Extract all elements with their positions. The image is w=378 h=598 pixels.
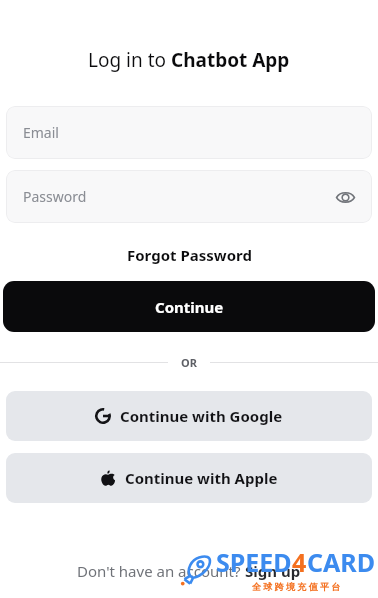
staticText: Password bbox=[23, 187, 87, 206]
button[interactable]: Email bbox=[6, 106, 372, 159]
staticText: Continue with Apple bbox=[125, 468, 278, 488]
button[interactable]: Continue bbox=[3, 281, 375, 332]
staticText: 4 bbox=[292, 545, 307, 579]
button[interactable]: Password bbox=[6, 170, 372, 223]
staticText: OR bbox=[181, 355, 197, 370]
button[interactable]: Sign up bbox=[245, 561, 301, 581]
staticText: Continue with Google bbox=[120, 406, 283, 426]
staticText: SPEED bbox=[216, 545, 292, 579]
staticText: Continue bbox=[155, 297, 224, 317]
staticText: CARD bbox=[307, 545, 376, 579]
staticText: Sign up bbox=[245, 561, 301, 581]
button[interactable]: Continue with Google bbox=[6, 391, 372, 441]
staticText: Log in to Chatbot App bbox=[88, 47, 290, 73]
button[interactable]: Continue with Apple bbox=[6, 453, 372, 503]
button[interactable]: Forgot Password bbox=[121, 243, 258, 267]
staticText: Forgot Password bbox=[127, 245, 252, 265]
staticText: 全 球 跨 境 充 值 平 台 bbox=[252, 580, 341, 592]
staticText: Don't have an account? bbox=[77, 561, 245, 581]
staticText: Email bbox=[23, 123, 59, 142]
button[interactable]: Show password bbox=[330, 182, 360, 212]
